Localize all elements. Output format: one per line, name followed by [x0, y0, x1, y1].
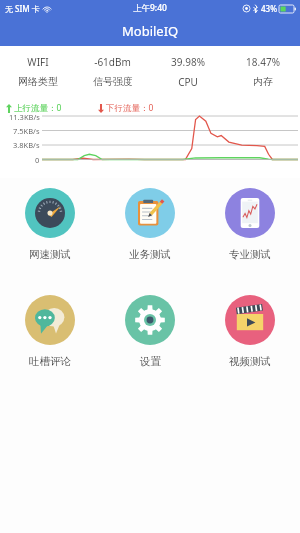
staticText: 吐槽评论	[29, 355, 71, 368]
staticText: 39.98%	[171, 55, 205, 69]
other: 网速测试	[25, 188, 75, 238]
staticText: -61dBm	[94, 55, 131, 69]
staticText: 信号强度	[93, 75, 133, 88]
other: 设置	[125, 295, 175, 345]
staticText: 上行流量：0	[14, 102, 62, 114]
staticText: 7.5KB/s	[13, 126, 40, 136]
staticText: 上午9:40	[133, 2, 167, 14]
other: 专业测试	[225, 188, 275, 238]
button[interactable]: 业务测试	[100, 188, 200, 261]
button[interactable]: 视频测试	[200, 295, 300, 368]
staticText: 11.3KB/s	[9, 112, 40, 122]
other: 视频测试	[225, 295, 275, 345]
staticText: 内存	[253, 75, 273, 88]
staticText: 下行流量：0	[106, 102, 154, 114]
staticText: 专业测试	[229, 248, 271, 261]
staticText: 43%	[261, 3, 277, 14]
staticText: 业务测试	[129, 248, 171, 261]
other: 业务测试	[125, 188, 175, 238]
staticText: 18.47%	[246, 55, 280, 69]
staticText: 网络类型	[18, 75, 58, 88]
staticText: MobileIQ	[122, 22, 179, 40]
staticText: 0	[35, 155, 40, 165]
staticText: CPU	[178, 75, 198, 89]
staticText: 视频测试	[229, 355, 271, 368]
staticText: 网速测试	[29, 248, 71, 261]
button[interactable]: 设置	[100, 295, 200, 368]
staticText: WIFI	[27, 55, 49, 69]
other: 吐槽评论	[25, 295, 75, 345]
button[interactable]: 吐槽评论	[0, 295, 100, 368]
button[interactable]: 网速测试	[0, 188, 100, 261]
staticText: 设置	[140, 355, 161, 368]
staticText: 3.8KB/s	[13, 140, 40, 150]
staticText: 无 SIM 卡	[5, 3, 40, 14]
button[interactable]: 专业测试	[200, 188, 300, 261]
